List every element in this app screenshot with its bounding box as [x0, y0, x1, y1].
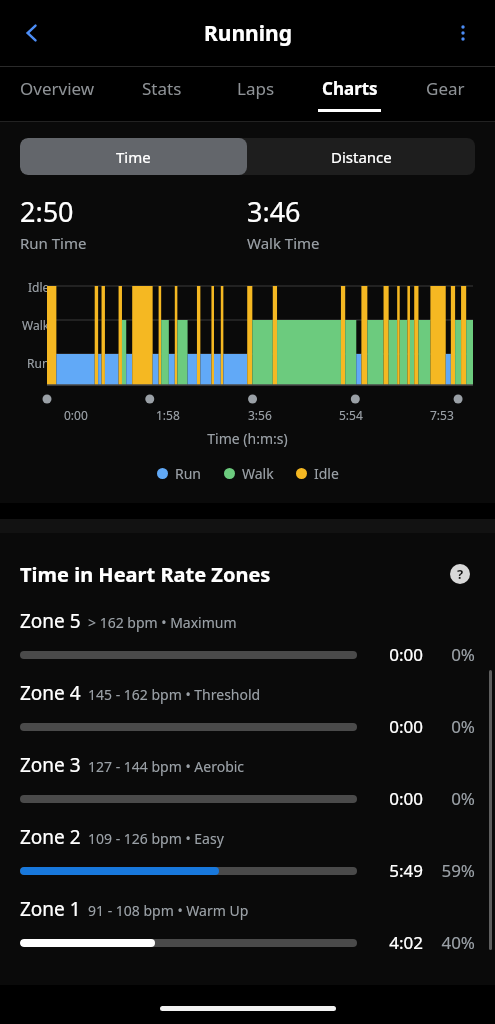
staticText: ?	[457, 565, 464, 583]
staticText: 0:00	[371, 787, 423, 810]
staticText: Idle	[314, 464, 339, 483]
button[interactable]: Back	[8, 9, 56, 57]
button[interactable]: Overview	[0, 67, 114, 121]
button[interactable]: More options	[439, 9, 487, 57]
staticText: Walk Time	[247, 233, 320, 253]
staticText: 7:53	[430, 407, 454, 423]
staticText: Charts	[322, 77, 378, 100]
staticText: Zone 5	[20, 608, 81, 634]
button[interactable]: Zone 2	[0, 817, 495, 889]
button[interactable]: Help	[445, 559, 475, 589]
button[interactable]: Stats	[114, 67, 208, 121]
staticText: Laps	[237, 77, 275, 100]
button[interactable]: Distance	[247, 138, 475, 175]
button[interactable]: Charts	[302, 67, 396, 121]
staticText: 145 - 162 bpm • Threshold	[88, 685, 261, 704]
staticText: Walk	[242, 464, 274, 483]
staticText: 109 - 126 bpm • Easy	[88, 829, 224, 848]
staticText: Zone 3	[20, 752, 81, 778]
staticText: Gear	[426, 77, 465, 100]
button[interactable]: Gear	[396, 67, 495, 121]
staticText: 0:00	[371, 715, 423, 738]
staticText: 91 - 108 bpm • Warm Up	[88, 901, 249, 920]
staticText: 2:50	[20, 193, 74, 230]
staticText: 0:00	[371, 643, 423, 666]
staticText: Idle	[28, 279, 50, 295]
staticText: Zone 2	[20, 824, 81, 850]
staticText: Walk	[22, 317, 50, 333]
staticText: 5:54	[339, 407, 363, 423]
staticText: 40%	[433, 931, 475, 954]
staticText: Time in Heart Rate Zones	[20, 561, 445, 588]
staticText: Distance	[331, 147, 392, 167]
button[interactable]: Zone 1	[0, 889, 495, 961]
staticText: Run Time	[20, 233, 87, 253]
staticText: 0%	[433, 715, 475, 738]
staticText: Run	[175, 464, 202, 483]
staticText: 0%	[433, 643, 475, 666]
staticText: Time (h:m:s)	[0, 429, 495, 448]
staticText: Time	[116, 147, 151, 167]
staticText: 0:00	[64, 407, 88, 423]
button[interactable]: Laps	[208, 67, 302, 121]
staticText: 3:46	[247, 193, 301, 230]
button[interactable]: Zone 4	[0, 673, 495, 745]
staticText: 4:02	[371, 931, 423, 954]
staticText: > 162 bpm • Maximum	[88, 613, 237, 632]
staticText: 5:49	[371, 859, 423, 882]
staticText: Run	[27, 355, 50, 371]
staticText: 127 - 144 bpm • Aerobic	[88, 757, 245, 776]
staticText: 59%	[433, 859, 475, 882]
staticText: Zone 1	[20, 896, 81, 922]
button[interactable]: Zone 5	[0, 601, 495, 673]
button[interactable]: Zone 3	[0, 745, 495, 817]
staticText: Running	[204, 19, 292, 48]
staticText: 0%	[433, 787, 475, 810]
staticText: Zone 4	[20, 680, 81, 706]
staticText: Overview	[20, 77, 95, 100]
staticText: Stats	[142, 77, 182, 100]
staticText: 3:56	[248, 407, 272, 423]
button[interactable]: Time	[20, 138, 247, 175]
staticText: 1:58	[156, 407, 180, 423]
